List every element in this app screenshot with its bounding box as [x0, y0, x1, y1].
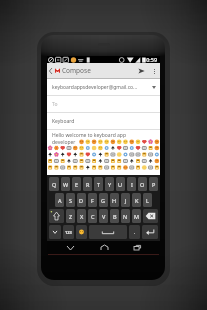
button[interactable]: X: [77, 209, 86, 223]
staticText: G: [101, 197, 106, 204]
staticText: J: [125, 197, 127, 204]
staticText: T: [97, 181, 101, 188]
button[interactable]: More options: [149, 64, 159, 78]
button[interactable]: Y: [105, 177, 114, 191]
button[interactable]: Back: [60, 241, 80, 254]
button[interactable]: W: [61, 177, 70, 191]
button[interactable]: V: [99, 209, 108, 223]
staticText: X: [80, 213, 84, 220]
button[interactable]: F: [88, 193, 97, 207]
staticText: Z: [69, 213, 73, 220]
button[interactable]: N: [121, 209, 130, 223]
button[interactable]: K: [132, 193, 141, 207]
button[interactable]: I: [127, 177, 136, 191]
button[interactable]: Send: [133, 64, 149, 78]
button[interactable]: C: [88, 209, 97, 223]
button[interactable]: Q: [49, 177, 59, 191]
staticText: C: [91, 213, 95, 220]
staticText: R: [86, 181, 90, 188]
staticText: K: [135, 197, 139, 204]
staticText: D: [79, 197, 84, 204]
staticText: S: [69, 197, 73, 204]
button[interactable]: Enter: [142, 225, 158, 239]
button[interactable]: Shift: [49, 209, 64, 223]
button[interactable]: R: [83, 177, 92, 191]
button[interactable]: L: [143, 193, 152, 207]
staticText: N: [123, 213, 128, 220]
staticText: 10:59: [143, 56, 158, 63]
button[interactable]: Home: [94, 241, 114, 254]
button[interactable]: Emoji: [76, 225, 87, 239]
staticText: Y: [108, 181, 112, 188]
staticText: Compose: [62, 66, 91, 75]
button[interactable]: B: [110, 209, 119, 223]
button[interactable]: Z: [66, 209, 75, 223]
staticText: Keyboard: [52, 118, 75, 125]
button[interactable]: A: [55, 193, 64, 207]
button[interactable]: Space: [89, 225, 127, 239]
staticText: .: [134, 229, 136, 236]
staticText: L: [146, 197, 149, 204]
staticText: To: [52, 101, 58, 108]
staticText: B: [113, 213, 117, 220]
staticText: A: [58, 197, 62, 204]
button[interactable]: U: [116, 177, 125, 191]
button[interactable]: T: [94, 177, 103, 191]
staticText: Q: [52, 181, 57, 188]
button[interactable]: P: [149, 177, 158, 191]
staticText: Hello welcome to keyboard app developer: [52, 132, 126, 145]
button[interactable]: .: [129, 225, 140, 239]
staticText: M: [134, 213, 139, 220]
button[interactable]: M: [132, 209, 141, 223]
button[interactable]: Hide keyboard: [49, 225, 61, 239]
button[interactable]: S: [66, 193, 75, 207]
staticText: E: [75, 181, 79, 188]
staticText: keyboardappsdeveloper@gmail.co...: [52, 84, 138, 91]
button[interactable]: J: [121, 193, 130, 207]
staticText: U: [118, 181, 123, 188]
staticText: F: [91, 197, 94, 204]
button[interactable]: E: [72, 177, 81, 191]
button[interactable]: O: [138, 177, 147, 191]
staticText: H: [112, 197, 117, 204]
button[interactable]: H: [110, 193, 119, 207]
staticText: V: [102, 213, 106, 220]
button[interactable]: D: [77, 193, 86, 207]
staticText: 123: [65, 230, 72, 235]
staticText: I: [131, 181, 133, 188]
button[interactable]: Back: [47, 64, 54, 78]
button[interactable]: G: [99, 193, 108, 207]
button[interactable]: Recent apps: [127, 241, 147, 254]
staticText: W: [63, 181, 69, 188]
button[interactable]: Backspace: [143, 209, 158, 223]
button[interactable]: 123: [63, 225, 74, 239]
staticText: P: [152, 181, 156, 188]
staticText: O: [140, 181, 145, 188]
